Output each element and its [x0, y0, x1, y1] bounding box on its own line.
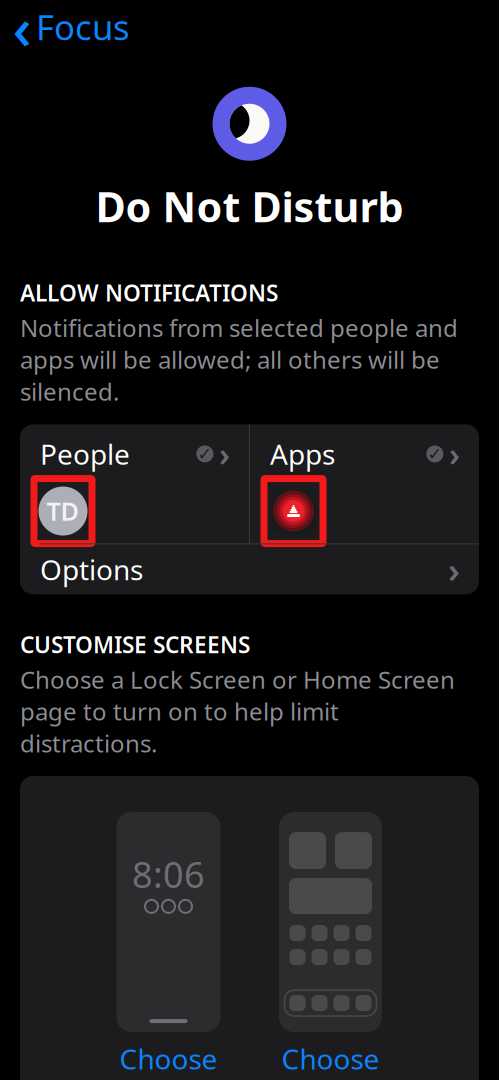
staticText: ›: [448, 546, 460, 592]
staticText: ›: [449, 433, 460, 475]
staticText: Choose: [119, 1040, 217, 1077]
button[interactable]: Choose: [265, 1032, 395, 1080]
staticText: ALLOW NOTIFICATIONS: [20, 278, 278, 308]
staticText: ›: [219, 433, 230, 475]
staticText: CUSTOMISE SCREENS: [20, 629, 250, 659]
button[interactable]: People: [20, 424, 249, 543]
staticText: Choose a Lock Screen or Home Screen page…: [20, 663, 455, 759]
staticText: Choose: [281, 1040, 379, 1077]
button[interactable]: Apps: [250, 424, 479, 543]
staticText: Do Not Disturb: [95, 179, 403, 234]
button[interactable]: Choose: [103, 1032, 233, 1080]
button[interactable]: ‹: [0, 0, 144, 58]
button[interactable]: Options: [20, 544, 479, 594]
staticText: Notifications from selected people and a…: [20, 312, 458, 407]
staticText: TD: [46, 494, 79, 528]
staticText: ✓: [197, 444, 212, 464]
staticText: Options: [40, 551, 143, 588]
staticText: ‹: [12, 0, 31, 66]
staticText: ✓: [427, 444, 442, 464]
staticText: People: [40, 435, 130, 473]
staticText: 8:06: [132, 850, 205, 898]
staticText: Apps: [270, 435, 335, 473]
staticText: Focus: [36, 4, 130, 50]
